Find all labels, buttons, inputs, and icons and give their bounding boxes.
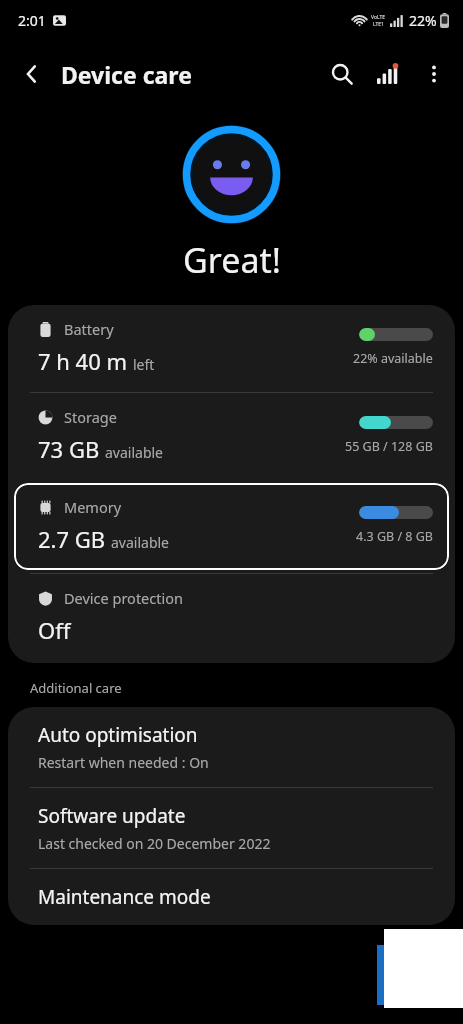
staticText: Restart when needed : On [38,753,209,772]
staticText: Battery [64,319,114,339]
staticText: Software update [38,803,186,829]
staticText: Device protection [64,588,183,608]
staticText: 4.3 GB / 8 GB [356,528,433,545]
staticText: Additional care [30,679,122,697]
button[interactable]: Storage [8,393,455,480]
staticText: Auto optimisation [38,722,198,748]
button[interactable]: Auto optimisation [8,707,455,787]
staticText: VoLTE [371,14,386,21]
staticText: 7 h 40 m [38,346,128,376]
button[interactable]: Software update [8,788,455,868]
button[interactable]: Memory [14,483,449,570]
staticText: LTE1 [373,21,384,28]
staticText: 55 GB / 128 GB [345,438,433,455]
staticText: Memory [64,497,122,517]
button[interactable]: Maintenance mode [8,869,455,925]
staticText: Storage [64,407,117,427]
button[interactable]: Device protection [8,574,455,663]
staticText: 22% [409,11,437,30]
staticText: 2.7 GB [38,524,106,554]
staticText: 22% available [353,350,433,367]
button[interactable]: Usage statistics [365,51,411,97]
staticText: Maintenance mode [38,884,211,910]
staticText: 2:01 [18,11,46,30]
button[interactable]: Back [8,50,56,98]
staticText: available [111,533,170,552]
staticText: Off [38,615,71,645]
staticText: left [133,355,155,374]
staticText: 73 GB [38,434,100,464]
button[interactable]: Search [319,51,365,97]
button[interactable]: Battery [8,305,455,392]
staticText: available [105,443,164,462]
staticText: Last checked on 20 December 2022 [38,834,271,853]
staticText: Device care [61,59,192,90]
button[interactable]: More options [411,51,457,97]
staticText: Great! [183,237,281,283]
